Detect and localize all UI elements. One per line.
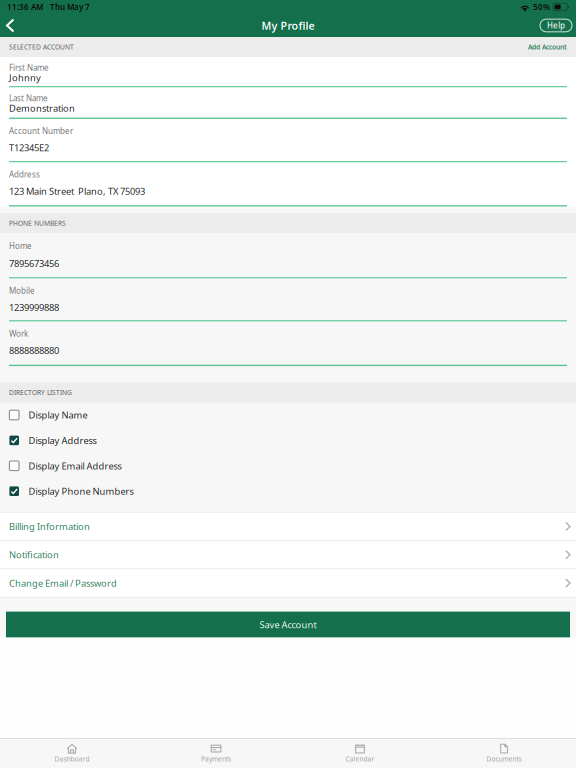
- button[interactable]: Billing Information: [0, 513, 576, 541]
- button[interactable]: Display Address: [0, 428, 576, 453]
- staticText: Display Address: [28, 434, 96, 447]
- staticText: PHONE NUMBERS: [9, 219, 66, 228]
- staticText: Mobile: [9, 285, 35, 296]
- staticText: Demonstration: [9, 102, 75, 114]
- staticText: 50%: [533, 2, 550, 12]
- staticText: Address: [9, 169, 40, 180]
- staticText: Johnny: [9, 71, 41, 84]
- button[interactable]: Help: [540, 19, 572, 32]
- staticText: SELECTED ACCOUNT: [9, 43, 74, 51]
- button[interactable]: Change Email / Password: [0, 569, 576, 598]
- button[interactable]: Dashboard: [0, 739, 144, 768]
- button[interactable]: Display Name: [0, 402, 576, 428]
- staticText: Display Name: [28, 409, 87, 421]
- staticText: Calendar: [345, 755, 374, 763]
- staticText: Thu May 7: [50, 2, 90, 12]
- staticText: Notification: [9, 549, 59, 561]
- staticText: Help: [547, 20, 565, 31]
- staticText: 123 Main Street Plano, TX 75093: [9, 185, 145, 197]
- button[interactable]: Save Account: [6, 612, 570, 638]
- staticText: My Profile: [261, 18, 314, 33]
- button[interactable]: Display Phone Numbers: [0, 478, 576, 504]
- staticText: 11:36 AM: [7, 2, 43, 12]
- button[interactable]: Add Account: [528, 43, 567, 51]
- button[interactable]: Back: [0, 15, 21, 36]
- staticText: Dashboard: [54, 755, 89, 763]
- button[interactable]: Display Email Address: [0, 453, 576, 478]
- button[interactable]: Calendar: [288, 739, 432, 768]
- staticText: Save Account: [259, 618, 316, 631]
- staticText: Change Email / Password: [9, 577, 117, 589]
- button[interactable]: Payments: [144, 739, 288, 768]
- staticText: Payments: [201, 755, 231, 763]
- staticText: Documents: [486, 755, 521, 763]
- staticText: Display Phone Numbers: [28, 485, 133, 497]
- button[interactable]: Notification: [0, 541, 576, 569]
- staticText: 8888888880: [9, 344, 59, 356]
- staticText: Display Email Address: [28, 460, 121, 472]
- staticText: Last Name: [9, 93, 48, 103]
- staticText: Billing Information: [9, 520, 90, 533]
- button[interactable]: Documents: [432, 739, 576, 768]
- staticText: T12345E2: [9, 141, 49, 154]
- staticText: 1239999888: [9, 301, 59, 313]
- staticText: Account Number: [9, 126, 73, 136]
- staticText: Add Account: [528, 43, 567, 51]
- staticText: Work: [9, 328, 28, 339]
- staticText: 7895673456: [9, 257, 59, 269]
- staticText: Home: [9, 241, 32, 251]
- staticText: First Name: [9, 62, 49, 73]
- staticText: DIRECTORY LISTING: [9, 388, 72, 397]
